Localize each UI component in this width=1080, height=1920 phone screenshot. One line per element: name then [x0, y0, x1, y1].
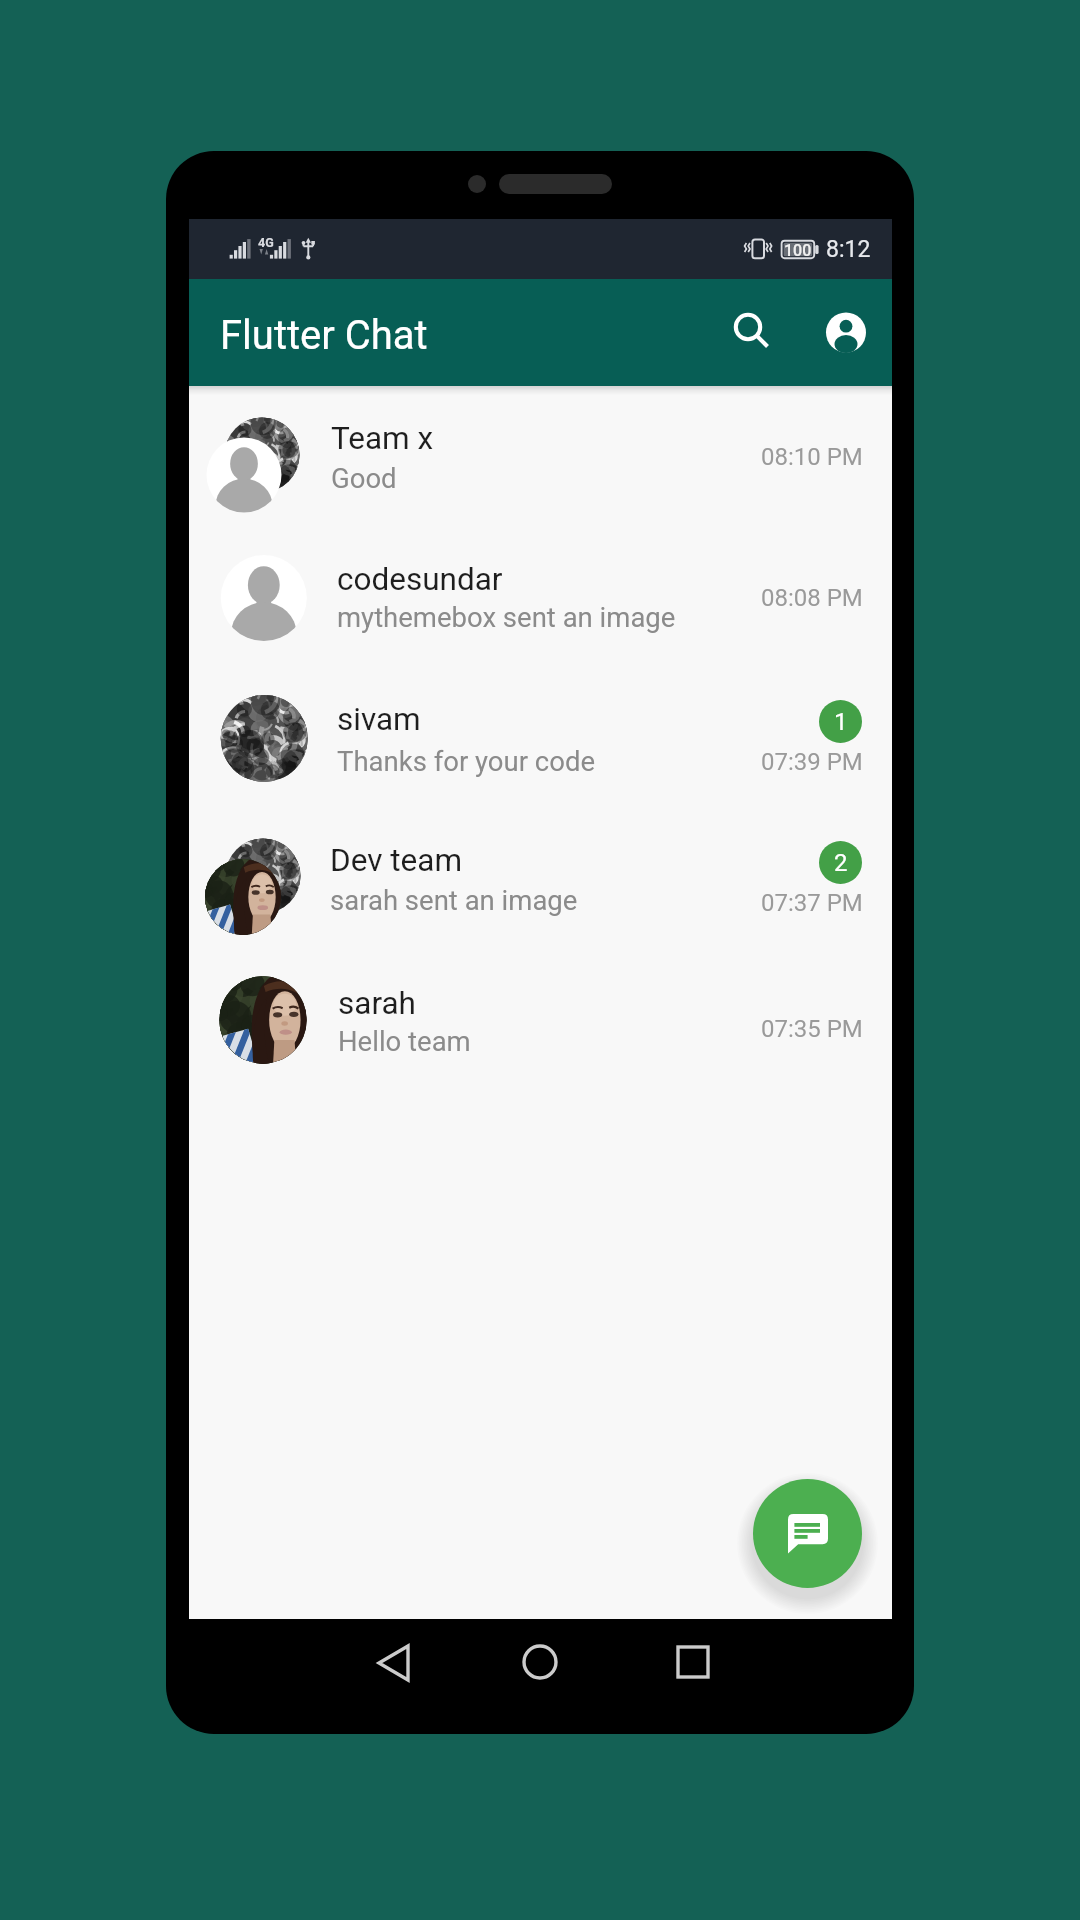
staticText: 2 [834, 849, 848, 877]
staticText: sarah sent an image [330, 884, 578, 916]
staticText: 08:08 PM [761, 584, 863, 612]
staticText: Flutter Chat [220, 312, 428, 359]
button[interactable]: Recents [668, 1636, 748, 1716]
staticText: 4G [258, 235, 274, 250]
staticText: Thanks for your code [337, 745, 596, 777]
button[interactable]: codesundar [189, 532, 892, 669]
staticText: 07:39 PM [761, 748, 863, 776]
staticText: sarah [338, 985, 416, 1022]
staticText: sivam [337, 701, 421, 738]
staticText: mythemebox sent an image [337, 601, 676, 633]
staticText: 07:37 PM [761, 889, 863, 917]
button[interactable]: sivam [189, 669, 892, 815]
staticText: codesundar [337, 561, 503, 598]
staticText: 8:12 [826, 236, 871, 263]
staticText: Hello team [338, 1025, 471, 1057]
staticText: Good [331, 462, 397, 494]
staticText: Team x [331, 420, 434, 457]
button[interactable]: Home [515, 1636, 595, 1716]
button[interactable]: Team x [189, 386, 892, 532]
button[interactable]: New chat [753, 1479, 862, 1588]
staticText: 100 [784, 241, 812, 260]
button[interactable]: Search [705, 284, 801, 380]
button[interactable]: Back [369, 1636, 449, 1716]
staticText: 08:10 PM [761, 443, 863, 471]
button[interactable]: sarah [189, 955, 892, 1085]
staticText: 07:35 PM [761, 1015, 863, 1043]
button[interactable]: Dev team [189, 815, 892, 955]
staticText: Dev team [330, 842, 463, 879]
staticText: 1 [834, 708, 848, 736]
button[interactable]: Account [798, 284, 894, 380]
